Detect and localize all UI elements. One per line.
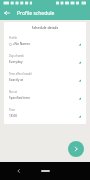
staticText: «No Name»: [13, 42, 78, 46]
staticText: Everyday: [9, 60, 78, 64]
button[interactable]: Back: [14, 166, 24, 176]
staticText: Run at: [9, 90, 17, 94]
staticText: Day of week: [9, 54, 24, 58]
button[interactable]: Home: [38, 167, 52, 175]
button[interactable]: Time effect (mode): [9, 69, 81, 83]
staticText: Schedule details: [9, 25, 81, 30]
staticText: Profile: [9, 36, 17, 40]
button[interactable]: Time: [9, 105, 81, 119]
button[interactable]: Navigate up: [0, 6, 14, 20]
staticText: Exactly at: [9, 78, 78, 82]
staticText: Profile schedule: [17, 10, 55, 17]
staticText: Time: [9, 108, 15, 112]
staticText: Specified time: [9, 96, 78, 100]
staticText: Time effect (mode): [9, 72, 32, 76]
staticText: 18:00: [9, 114, 78, 118]
button[interactable]: Day of week: [9, 51, 81, 65]
button[interactable]: Next: [68, 141, 84, 157]
button[interactable]: Profile: [9, 33, 81, 47]
button[interactable]: Run at: [9, 87, 81, 101]
